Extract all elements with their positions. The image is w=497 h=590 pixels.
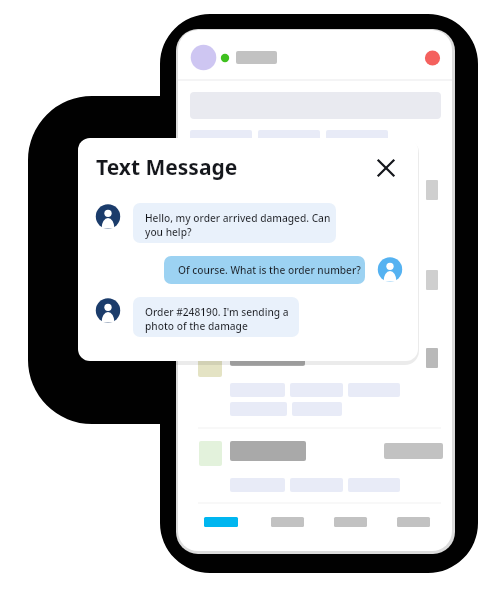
button[interactable] (78, 292, 418, 344)
button[interactable]: Home (198, 505, 259, 545)
staticText: you help? (145, 225, 192, 239)
button[interactable] (78, 250, 418, 292)
staticText: photo of the damage (145, 319, 248, 333)
button[interactable] (78, 195, 418, 250)
button[interactable]: Messages (322, 505, 383, 545)
staticText: Hello, my order arrived damaged. Can (145, 211, 331, 225)
staticText: Of course. What is the order number? (178, 263, 361, 277)
staticText: Order #248190. I'm sending a (145, 305, 289, 319)
button[interactable]: Close (370, 152, 402, 184)
button[interactable]: Profile (385, 505, 446, 545)
staticText: Text Message (96, 153, 238, 182)
button[interactable]: Notifications (418, 44, 446, 72)
button[interactable]: Orders (259, 505, 320, 545)
